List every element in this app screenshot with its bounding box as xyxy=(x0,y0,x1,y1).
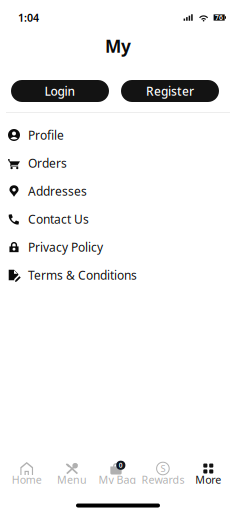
staticText: My Bag xyxy=(98,472,136,487)
staticText: 76 xyxy=(215,13,223,22)
staticText: My xyxy=(105,34,131,57)
staticText: Login xyxy=(44,83,75,99)
button[interactable]: Register xyxy=(121,80,219,102)
button[interactable]: More xyxy=(186,462,231,484)
button[interactable]: Profile xyxy=(0,121,236,149)
button[interactable]: S xyxy=(140,462,186,484)
staticText: 1:04 xyxy=(18,10,39,25)
staticText: Orders xyxy=(28,155,67,171)
button[interactable]: Terms & Conditions xyxy=(0,261,236,289)
staticText: Menu xyxy=(57,472,87,487)
button[interactable]: Privacy Policy xyxy=(0,233,236,261)
button[interactable]: 0 xyxy=(95,462,140,484)
staticText: Addresses xyxy=(28,183,87,199)
staticText: S xyxy=(160,462,165,475)
button[interactable]: Addresses xyxy=(0,177,236,205)
button[interactable]: Orders xyxy=(0,149,236,177)
button[interactable]: Contact Us xyxy=(0,205,236,233)
staticText: 0 xyxy=(119,461,123,470)
staticText: Terms & Conditions xyxy=(28,267,137,283)
staticText: Register xyxy=(146,83,194,99)
staticText: Contact Us xyxy=(28,211,89,227)
staticText: Home xyxy=(12,472,42,487)
button[interactable]: Login xyxy=(11,80,109,102)
staticText: Rewards xyxy=(141,472,184,487)
staticText: Privacy Policy xyxy=(28,239,103,255)
button[interactable]: Menu xyxy=(49,462,95,484)
button[interactable]: Home xyxy=(4,462,49,484)
staticText: More xyxy=(195,472,221,487)
staticText: Profile xyxy=(28,127,64,143)
